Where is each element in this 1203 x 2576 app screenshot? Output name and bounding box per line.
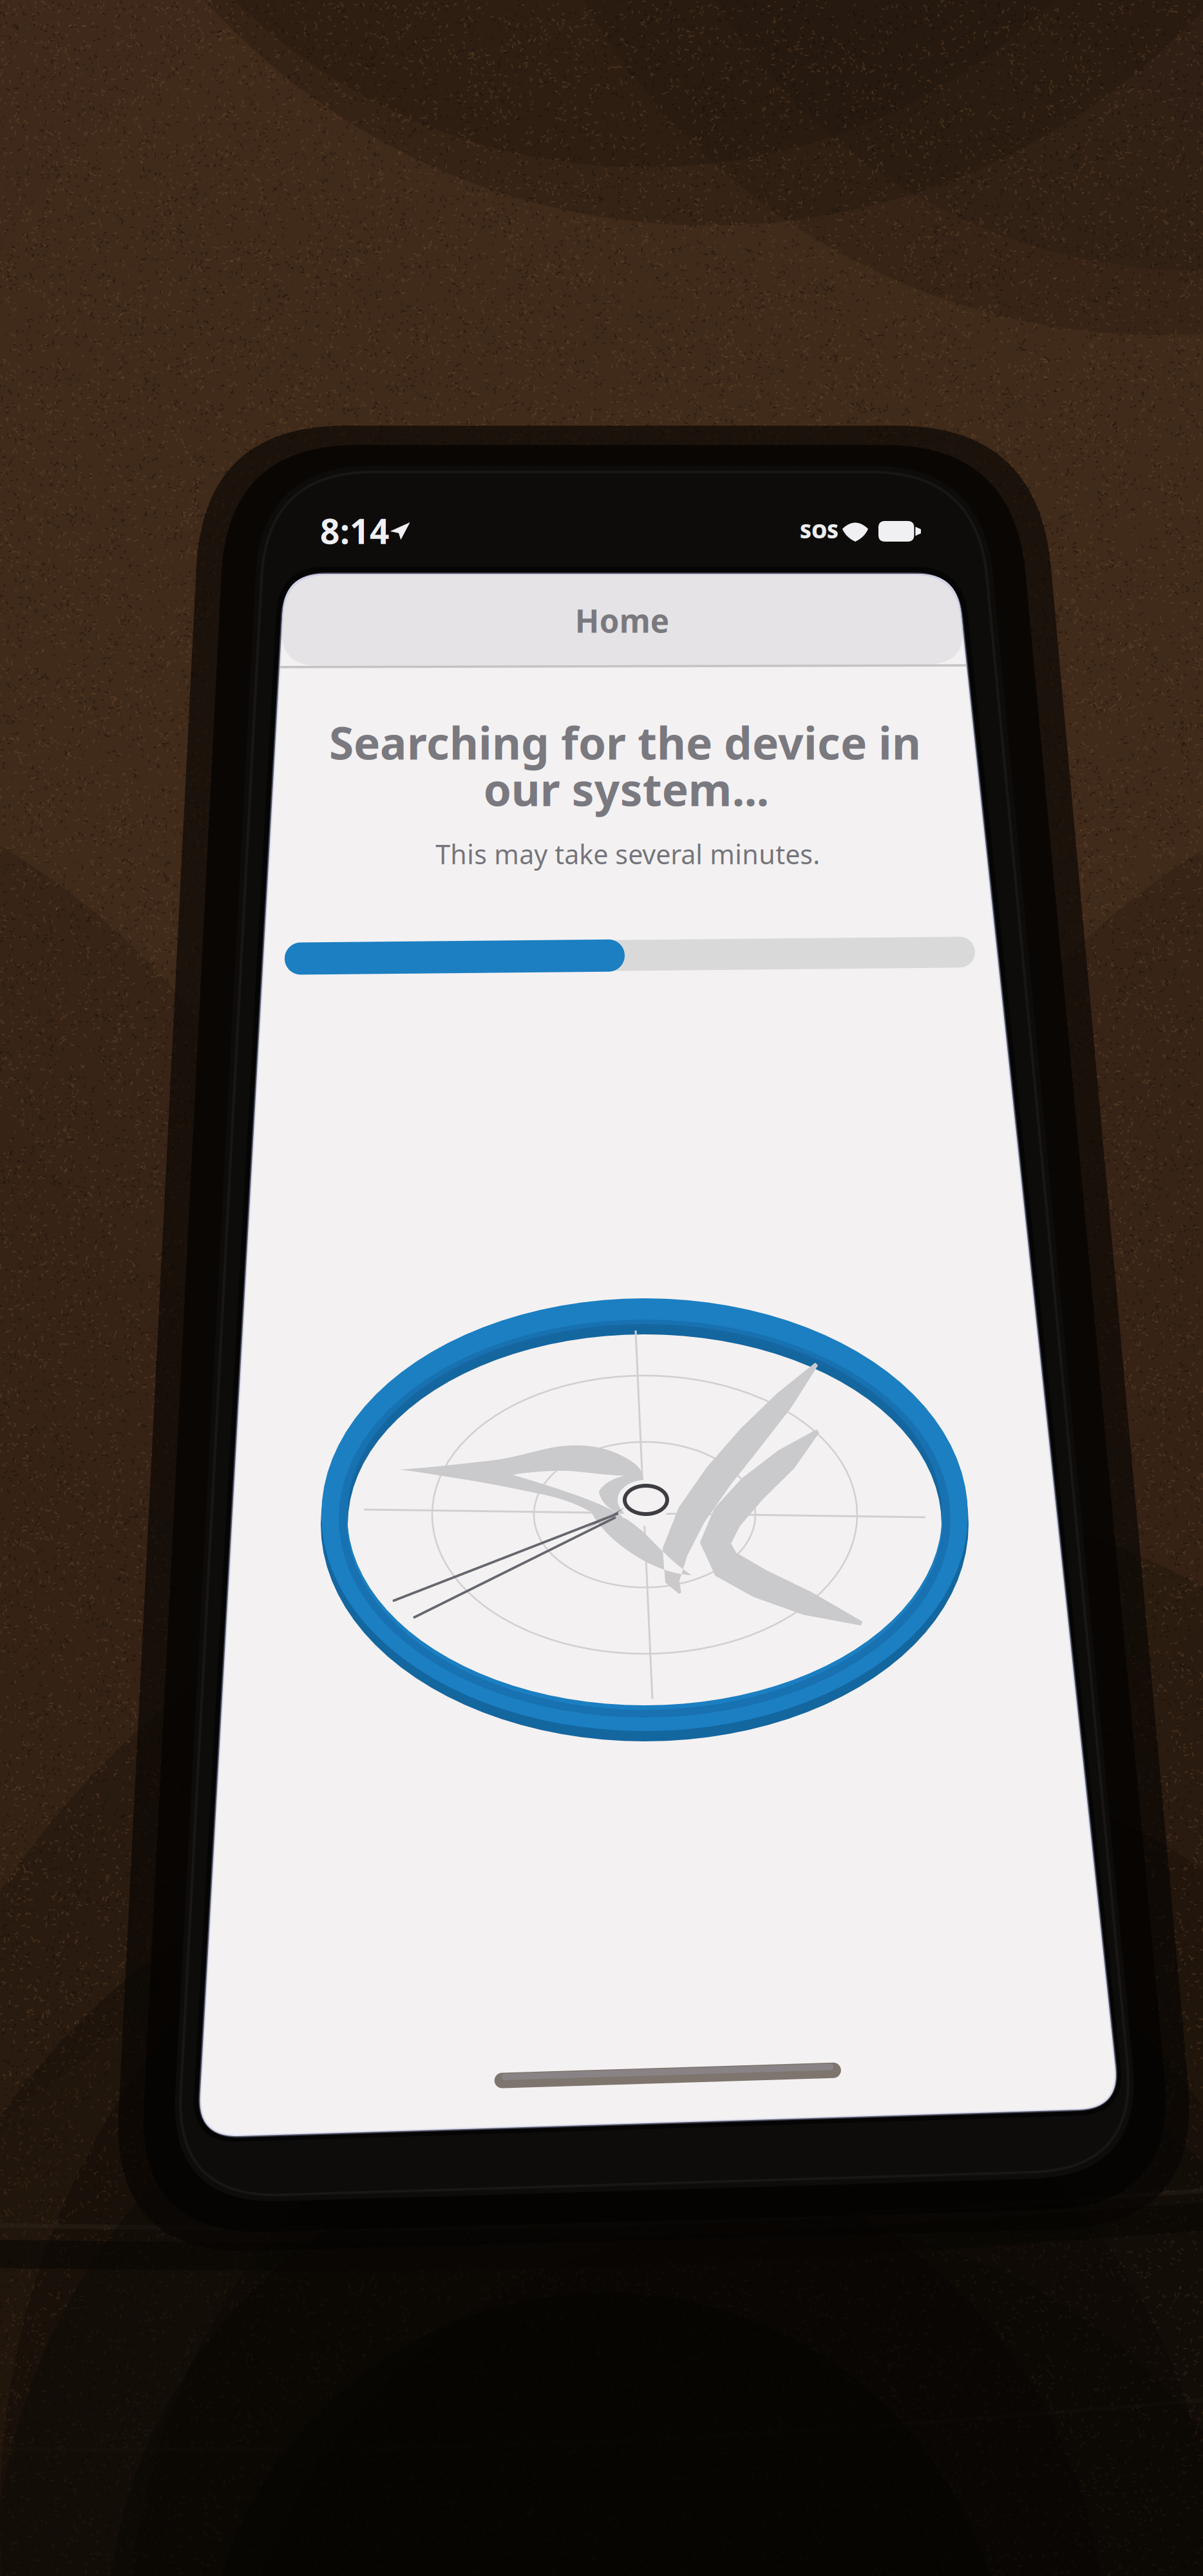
staticText: Searching for the device in: [329, 713, 921, 772]
staticText: Home: [575, 599, 669, 641]
staticText: This may take several minutes.: [435, 836, 820, 872]
staticText: our system...: [483, 759, 769, 818]
staticText: SOS: [800, 518, 838, 544]
button[interactable]: Home: [487, 581, 757, 660]
staticText: 8:14: [320, 508, 390, 553]
button[interactable]: Location services active: [385, 517, 412, 543]
